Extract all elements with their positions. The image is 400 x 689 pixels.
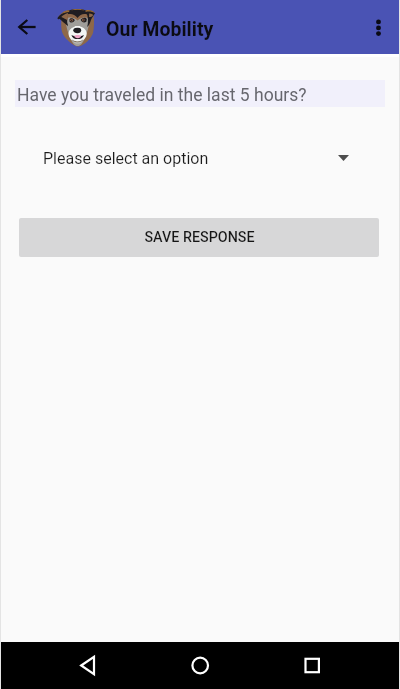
button[interactable]: SAVE RESPONSE <box>19 218 379 257</box>
staticText: Our Mobility <box>106 18 214 41</box>
button[interactable]: Navigate up <box>0 0 48 54</box>
button[interactable]: Back <box>0 642 134 689</box>
button[interactable]: Home <box>134 642 246 689</box>
button[interactable]: Please select an option <box>0 143 400 173</box>
staticText: SAVE RESPONSE <box>144 229 255 246</box>
button[interactable]: More options <box>360 0 398 54</box>
staticText: Have you traveled in the last 5 hours? <box>17 85 307 106</box>
staticText: Please select an option <box>43 149 209 168</box>
button[interactable]: Recent apps <box>246 642 400 689</box>
